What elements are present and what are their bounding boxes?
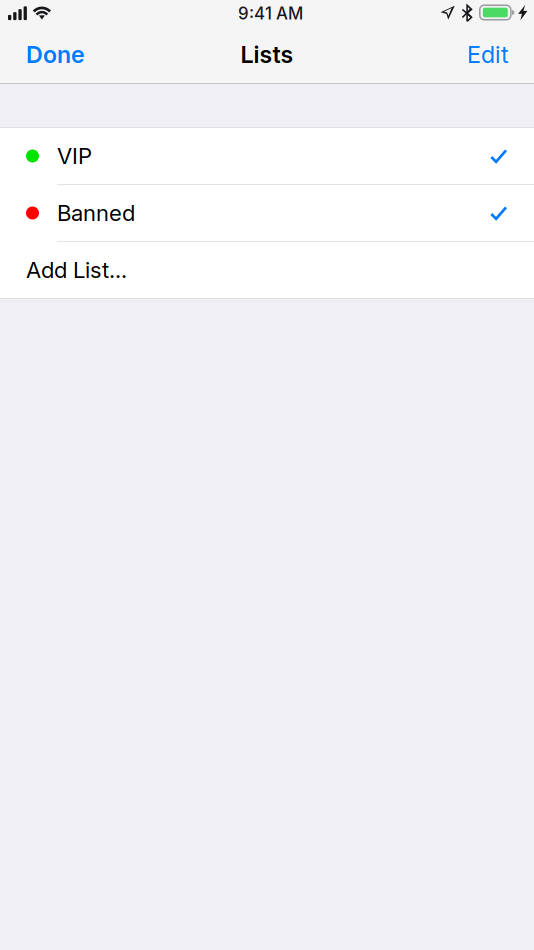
button[interactable]: Banned: [0, 185, 534, 241]
staticText: Lists: [240, 40, 293, 69]
button[interactable]: Add List...: [0, 242, 534, 298]
staticText: Edit: [467, 40, 509, 69]
button[interactable]: VIP: [0, 128, 534, 184]
staticText: Add List...: [26, 257, 127, 283]
staticText: Banned: [57, 200, 135, 226]
button[interactable]: Done: [17, 34, 94, 79]
staticText: VIP: [57, 143, 92, 169]
staticText: 9:41 AM: [238, 3, 303, 24]
button[interactable]: Edit: [458, 34, 518, 79]
staticText: Done: [26, 40, 85, 69]
